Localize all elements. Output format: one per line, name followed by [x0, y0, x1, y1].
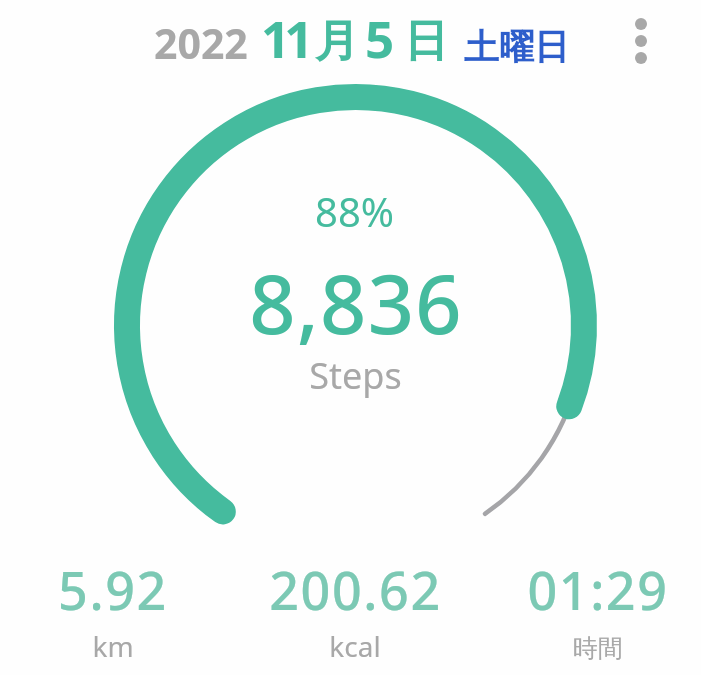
staticText: 5.92: [58, 554, 168, 625]
staticText: 88%: [315, 184, 394, 238]
staticText: 日: [404, 14, 448, 69]
staticText: 01:29: [527, 554, 669, 625]
staticText: 200.62: [269, 554, 442, 625]
staticText: 11: [261, 3, 308, 72]
button[interactable]: More options: [611, 0, 671, 82]
button[interactable]: 01:29: [488, 554, 701, 664]
other: Daily step goal, 88 percent complete: [114, 84, 597, 567]
button[interactable]: 2022: [154, 15, 248, 71]
staticText: 時間: [573, 633, 623, 664]
staticText: Steps: [309, 351, 402, 400]
button[interactable]: 5.92: [3, 554, 223, 664]
staticText: kcal: [329, 627, 381, 664]
staticText: km: [92, 627, 134, 664]
staticText: 月: [315, 14, 359, 69]
staticText: 土曜日: [464, 25, 569, 69]
staticText: 5: [365, 3, 395, 72]
staticText: 8,836: [249, 247, 463, 357]
button[interactable]: 200.62: [245, 554, 465, 664]
